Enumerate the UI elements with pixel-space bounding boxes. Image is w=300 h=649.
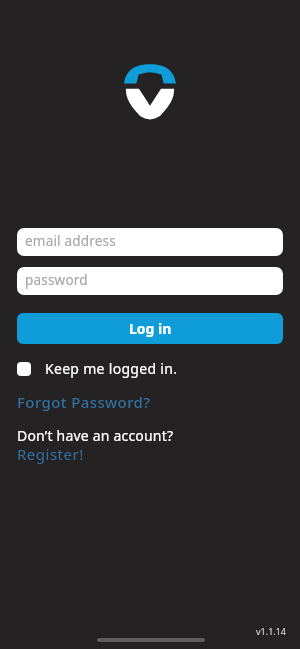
staticText: email address [25, 232, 116, 250]
button[interactable]: password [17, 267, 283, 295]
button[interactable]: Register! [17, 444, 84, 464]
button[interactable]: email address [17, 228, 283, 256]
button[interactable]: Log in [17, 313, 283, 344]
staticText: password [25, 271, 88, 289]
staticText: Don’t have an account? [17, 426, 174, 445]
staticText: Keep me logged in. [45, 359, 178, 378]
button[interactable]: Keep me logged in. [17, 359, 178, 378]
staticText: v1.1.14 [256, 625, 286, 637]
staticText: Log in [129, 319, 172, 338]
button[interactable]: Forgot Password? [17, 392, 151, 412]
